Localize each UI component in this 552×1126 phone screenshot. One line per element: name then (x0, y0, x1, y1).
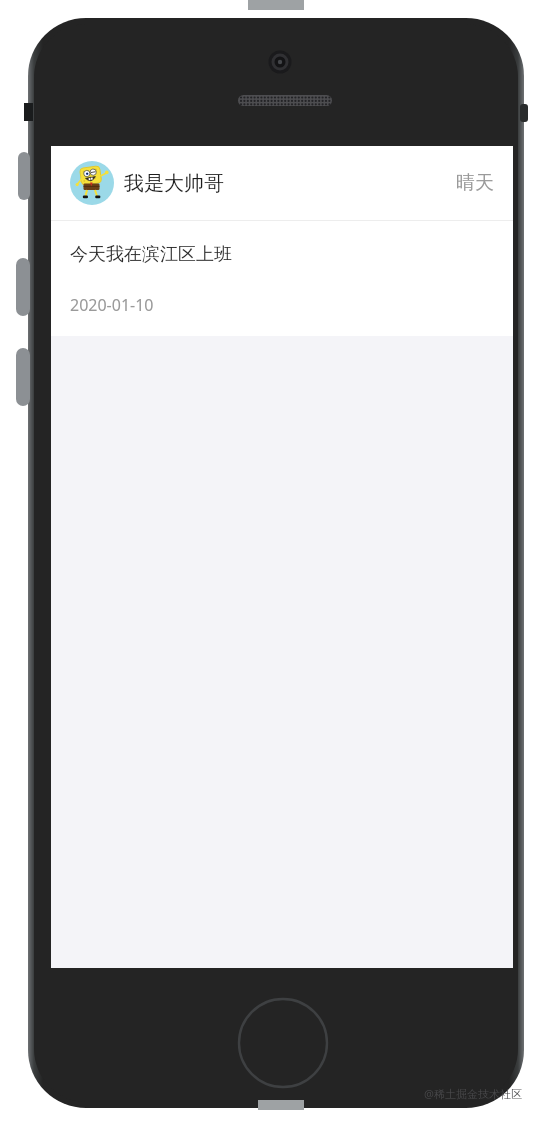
other: 用户头像 (70, 161, 114, 205)
staticText: @稀土掘金技术社区 (424, 1086, 522, 1101)
button[interactable]: 用户头像 (51, 146, 513, 220)
staticText: 今天我在滨江区上班 (70, 243, 232, 266)
staticText: 2020-01-10 (70, 294, 154, 316)
button[interactable]: 今天我在滨江区上班 (51, 221, 513, 336)
staticText: 我是大帅哥 (124, 171, 224, 196)
staticText: 晴天 (456, 171, 494, 195)
